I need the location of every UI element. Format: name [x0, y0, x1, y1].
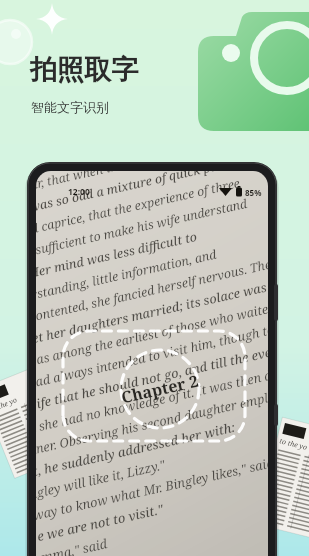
button[interactable]: Camera text recognition preview	[0, 0, 309, 556]
